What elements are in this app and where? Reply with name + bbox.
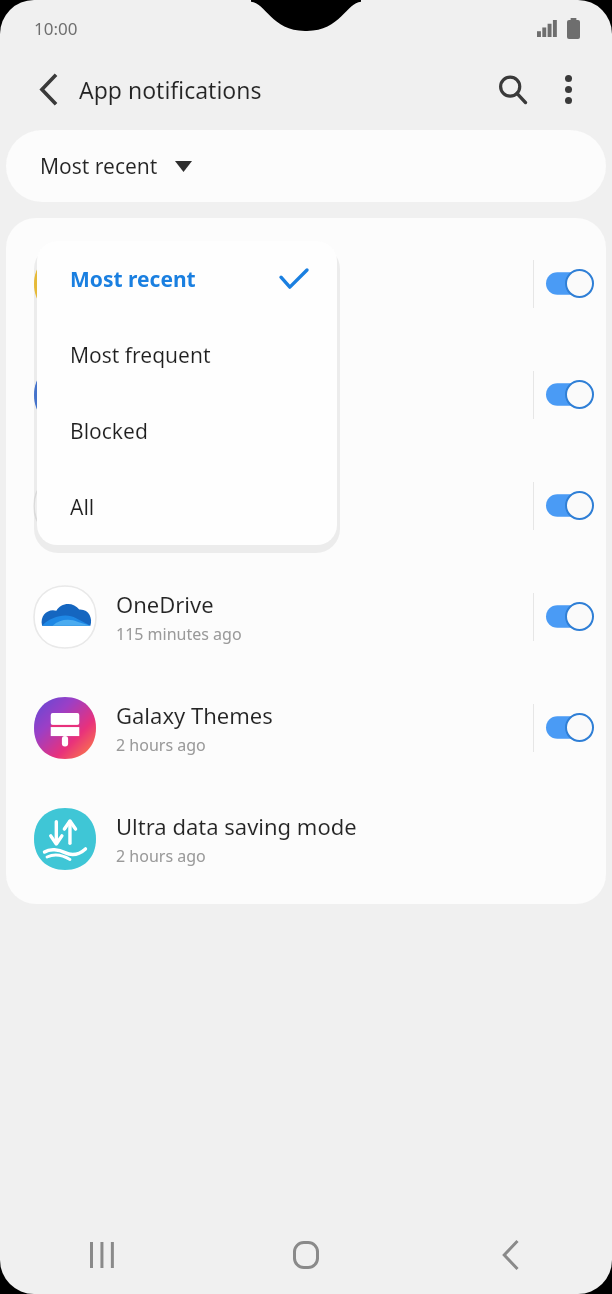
button[interactable]: Recent apps bbox=[0, 1216, 204, 1294]
button[interactable]: Home bbox=[204, 1216, 408, 1294]
button[interactable]: More options bbox=[540, 61, 596, 117]
staticText: Samsung Notes bbox=[116, 256, 279, 286]
button[interactable]: Most recent bbox=[37, 241, 337, 317]
button[interactable]: Samsung Notes bbox=[6, 228, 606, 339]
staticText: 2 hours ago bbox=[116, 734, 206, 756]
button[interactable]: All bbox=[37, 469, 337, 545]
button[interactable]: Ultra data saving mode bbox=[6, 783, 606, 894]
button[interactable]: Galaxy Store bbox=[6, 339, 606, 450]
staticText: 10:00 bbox=[34, 17, 78, 40]
staticText: 2 hours ago bbox=[116, 845, 206, 867]
staticText: 115 minutes ago bbox=[116, 623, 242, 645]
staticText: Blocked bbox=[70, 417, 148, 446]
button[interactable]: Blocked bbox=[37, 393, 337, 469]
button[interactable]: Back bbox=[408, 1216, 612, 1294]
button[interactable]: Toggle notifications for OneDrive bbox=[534, 561, 606, 672]
staticText: Galaxy Store bbox=[116, 367, 246, 397]
staticText: App notifications bbox=[79, 74, 262, 105]
button[interactable]: Most frequent bbox=[37, 317, 337, 393]
staticText: All bbox=[70, 493, 95, 522]
button[interactable]: YouTube Music bbox=[6, 450, 606, 561]
button[interactable]: Toggle notifications for YouTube Music bbox=[534, 450, 606, 561]
staticText: Most frequent bbox=[70, 341, 211, 370]
staticText: Most recent bbox=[70, 265, 196, 294]
staticText: Galaxy Themes bbox=[116, 700, 273, 730]
button[interactable]: OneDrive bbox=[6, 561, 606, 672]
staticText: Most recent bbox=[40, 152, 158, 181]
staticText: Ultra data saving mode bbox=[116, 811, 357, 841]
button[interactable]: Galaxy Themes bbox=[6, 672, 606, 783]
button[interactable]: Toggle notifications for Galaxy Store bbox=[534, 339, 606, 450]
staticText: OneDrive bbox=[116, 589, 214, 619]
button[interactable]: Toggle notifications for Samsung Notes bbox=[534, 228, 606, 339]
button[interactable]: Most recent bbox=[6, 130, 606, 202]
button[interactable]: Toggle notifications for Galaxy Themes bbox=[534, 672, 606, 783]
button[interactable]: Search bbox=[484, 61, 540, 117]
button[interactable]: Back bbox=[22, 63, 74, 115]
